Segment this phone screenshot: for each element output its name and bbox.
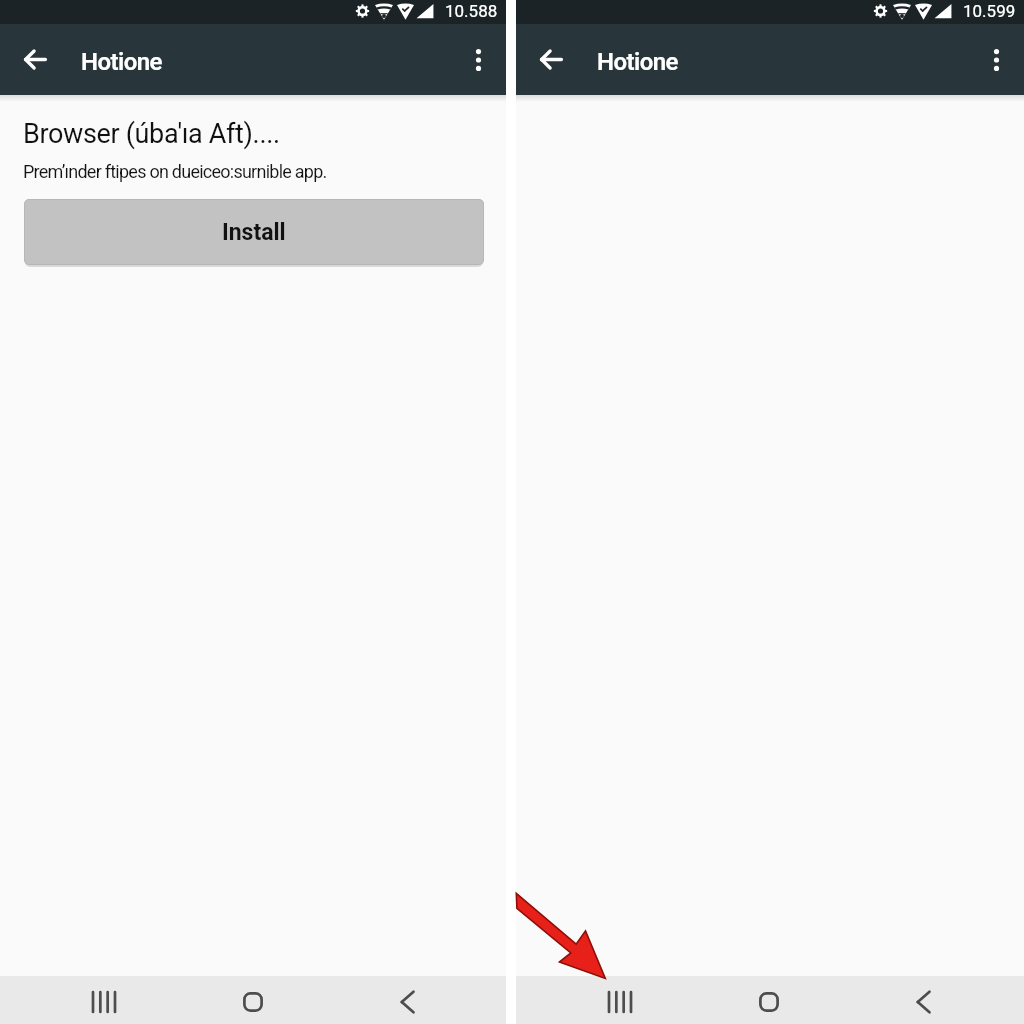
staticText: Browser (úba'ıa Aft)....: [23, 118, 280, 150]
button[interactable]: Navigate up: [528, 36, 575, 83]
staticText: 10.599: [963, 1, 1016, 21]
button[interactable]: Install: [24, 199, 484, 265]
button[interactable]: Home: [228, 978, 278, 1024]
button[interactable]: Navigate up: [12, 36, 59, 83]
button[interactable]: Recent apps: [79, 978, 129, 1024]
staticText: Premʼınder ftipes on dueiceo:surnible ap…: [23, 161, 327, 182]
staticText: Hotione: [81, 48, 162, 76]
button[interactable]: Back: [898, 978, 948, 1024]
button[interactable]: Back: [382, 978, 432, 1024]
button[interactable]: More options: [455, 36, 502, 83]
button[interactable]: Recent apps: [595, 978, 645, 1024]
button[interactable]: More options: [973, 36, 1020, 83]
staticText: Install: [222, 219, 286, 246]
button[interactable]: Home: [744, 978, 794, 1024]
staticText: Hotione: [597, 48, 678, 76]
staticText: 10.588: [445, 1, 498, 21]
